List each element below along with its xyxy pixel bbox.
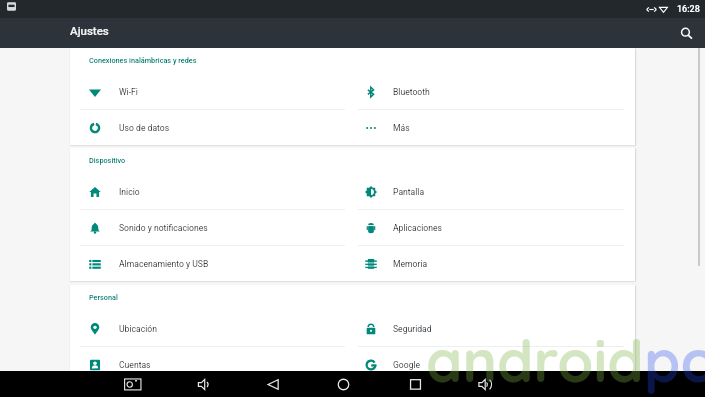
staticText: Sonido y notificaciones — [119, 223, 208, 233]
staticText: Bluetooth — [393, 87, 430, 97]
button[interactable]: Aplicaciones — [353, 210, 635, 246]
button[interactable]: Volume up — [472, 371, 498, 397]
staticText: Cuentas — [119, 360, 151, 370]
staticText: Conexiones inalámbricas y redes — [89, 56, 197, 65]
button[interactable]: Inicio — [70, 174, 353, 210]
staticText: Google — [393, 360, 421, 370]
staticText: Ajustes — [70, 24, 109, 37]
button[interactable]: Ubicación — [70, 311, 353, 347]
button[interactable]: Volume down — [190, 371, 216, 397]
button[interactable]: Uso de datos — [70, 110, 353, 146]
button[interactable]: Wi-Fi — [70, 74, 353, 110]
staticText: Pantalla — [393, 187, 425, 197]
staticText: 16:28 — [677, 4, 700, 15]
button[interactable]: Cuentas — [70, 347, 353, 383]
staticText: Seguridad — [393, 324, 432, 334]
button[interactable]: Más — [353, 110, 635, 146]
staticText: Dispositivo — [89, 156, 126, 165]
button[interactable]: Seguridad — [353, 311, 635, 347]
button[interactable]: Search — [672, 19, 700, 47]
staticText: pc — [644, 324, 705, 397]
button[interactable]: Sonido y notificaciones — [70, 210, 353, 246]
staticText: Aplicaciones — [393, 223, 443, 233]
button[interactable]: Bluetooth — [353, 74, 635, 110]
button[interactable]: Screenshot — [118, 371, 144, 397]
button[interactable]: Google — [353, 347, 635, 383]
button[interactable]: Memoria — [353, 246, 635, 282]
button[interactable]: Back — [260, 371, 286, 397]
staticText: Uso de datos — [119, 123, 170, 133]
staticText: Más — [393, 123, 410, 133]
button[interactable]: Pantalla — [353, 174, 635, 210]
staticText: Ubicación — [119, 324, 157, 334]
button[interactable]: Recents — [402, 371, 428, 397]
button[interactable]: Almacenamiento y USB — [70, 246, 353, 282]
staticText: Personal — [89, 293, 118, 302]
staticText: android — [426, 324, 644, 397]
staticText: Memoria — [393, 259, 428, 269]
staticText: Wi-Fi — [119, 87, 138, 97]
staticText: Inicio — [119, 187, 140, 197]
staticText: Almacenamiento y USB — [119, 259, 209, 269]
button[interactable]: Home — [330, 371, 356, 397]
